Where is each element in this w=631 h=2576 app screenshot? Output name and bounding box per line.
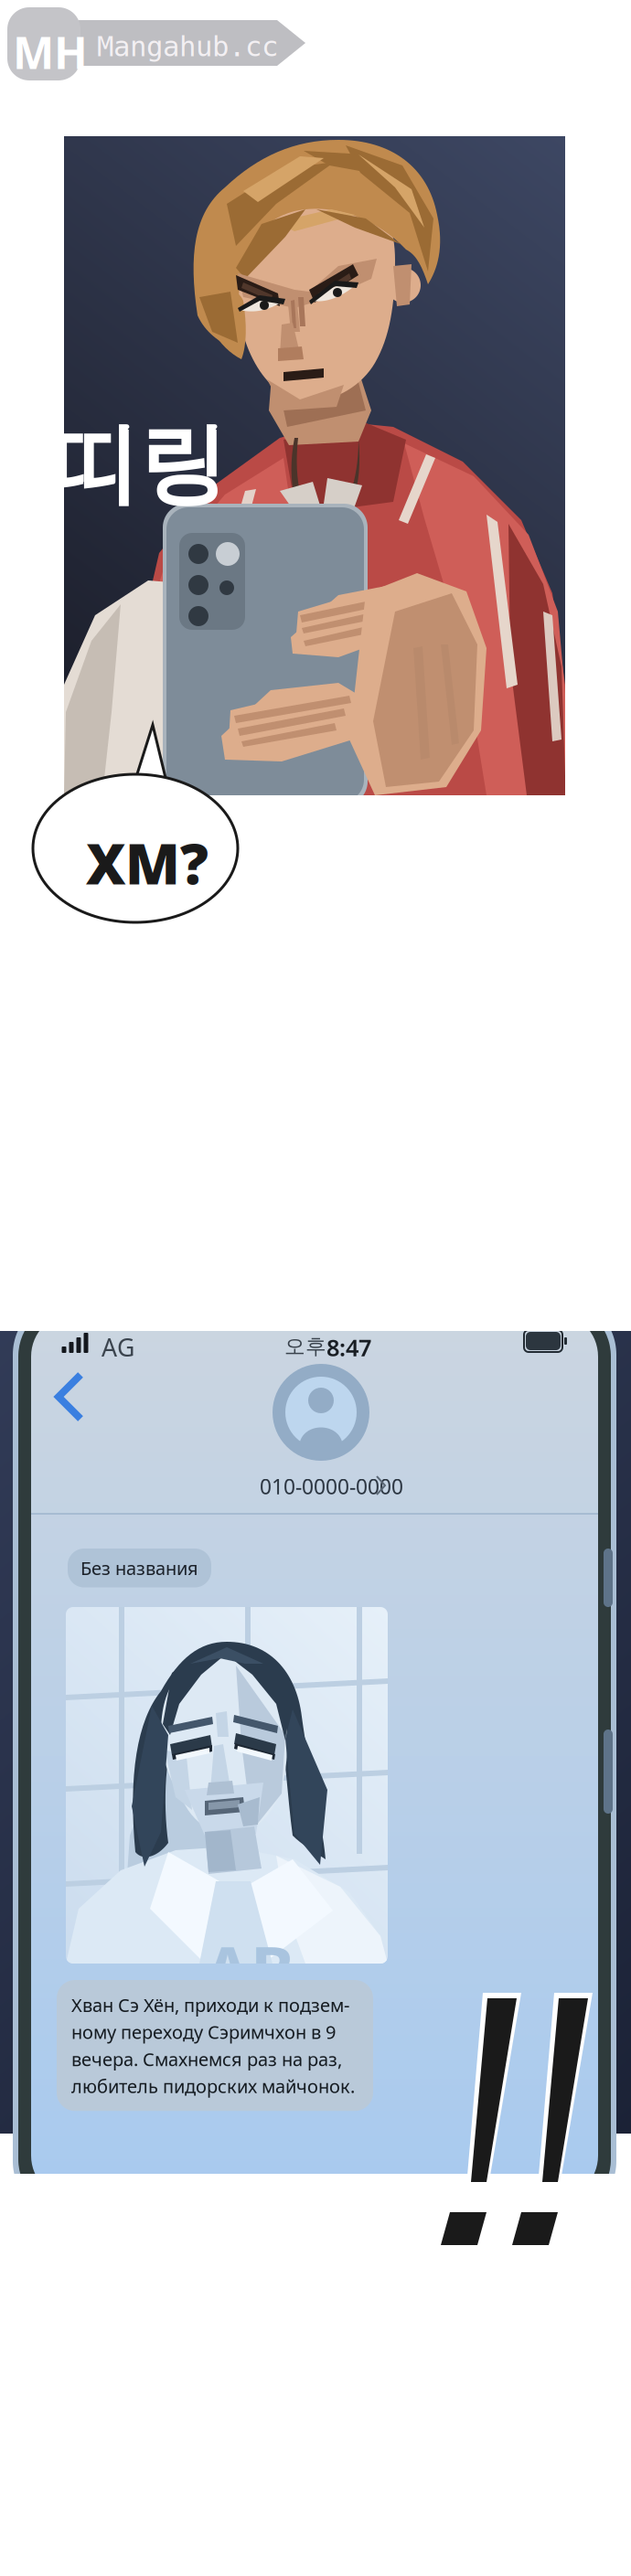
staticText: вечера. Смахнемся раз на раз,	[71, 2047, 342, 2071]
staticText: 010-0000-0000	[260, 1473, 403, 1500]
staticText: AB	[205, 1925, 294, 2013]
staticText: 8:47	[326, 1332, 371, 1363]
staticText: Mangahub.cc	[97, 30, 278, 63]
staticText: ХМ?	[86, 825, 209, 900]
staticText: 오후	[284, 1334, 326, 1359]
button[interactable]: Back	[51, 1369, 91, 1426]
staticText: Хван Сэ Хён, приходи к подзем-	[71, 1993, 349, 2017]
button[interactable]: Mangahub.cc	[0, 0, 320, 88]
staticText: Без названия	[80, 1556, 198, 1580]
button[interactable]: 010-0000-0000	[260, 1473, 417, 1498]
staticText: MH	[13, 23, 88, 81]
staticText: 띠링	[51, 410, 227, 518]
staticText: ному переходу Сэримчхон в 9	[71, 2020, 336, 2044]
staticText: AG	[102, 1331, 134, 1363]
staticText: любитель пидорских майчонок.	[71, 2074, 355, 2098]
